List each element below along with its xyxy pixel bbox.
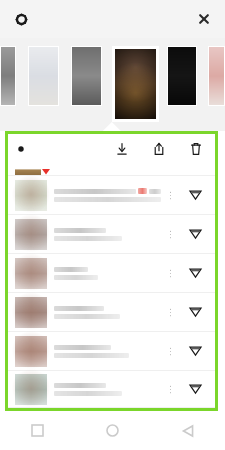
button[interactable]	[115, 49, 156, 119]
button[interactable]: More options	[8, 176, 215, 215]
button[interactable]: More options	[8, 293, 215, 332]
button[interactable]: Close	[191, 6, 217, 32]
button[interactable]: Delete	[184, 137, 208, 161]
button[interactable]: Send	[184, 378, 206, 400]
button[interactable]: Send	[184, 340, 206, 362]
button[interactable]: More options	[8, 254, 215, 293]
button[interactable]: More options	[161, 264, 179, 282]
button[interactable]: More options	[161, 342, 179, 360]
button[interactable]: Recents	[0, 411, 75, 450]
button[interactable]: Send	[184, 223, 206, 245]
button[interactable]: Download	[110, 137, 134, 161]
button[interactable]	[72, 47, 101, 105]
button[interactable]: More options	[8, 371, 215, 408]
button[interactable]: More options	[161, 186, 179, 204]
button[interactable]: Send	[184, 262, 206, 284]
button[interactable]	[29, 47, 58, 105]
button[interactable]	[168, 47, 196, 105]
button[interactable]: Back	[150, 411, 225, 450]
button[interactable]: More options	[8, 332, 215, 371]
button[interactable]: Share	[147, 137, 171, 161]
button[interactable]: More options	[8, 215, 215, 254]
button[interactable]: Home	[75, 411, 150, 450]
button[interactable]: Send	[184, 184, 206, 206]
button[interactable]	[1, 47, 15, 105]
button[interactable]: Send	[184, 301, 206, 323]
button[interactable]: Select all	[14, 142, 28, 156]
button[interactable]	[209, 47, 224, 105]
button[interactable]: More options	[161, 225, 179, 243]
button[interactable]: More options	[161, 380, 179, 398]
button[interactable]: Capture	[9, 7, 33, 31]
button[interactable]: More options	[161, 303, 179, 321]
